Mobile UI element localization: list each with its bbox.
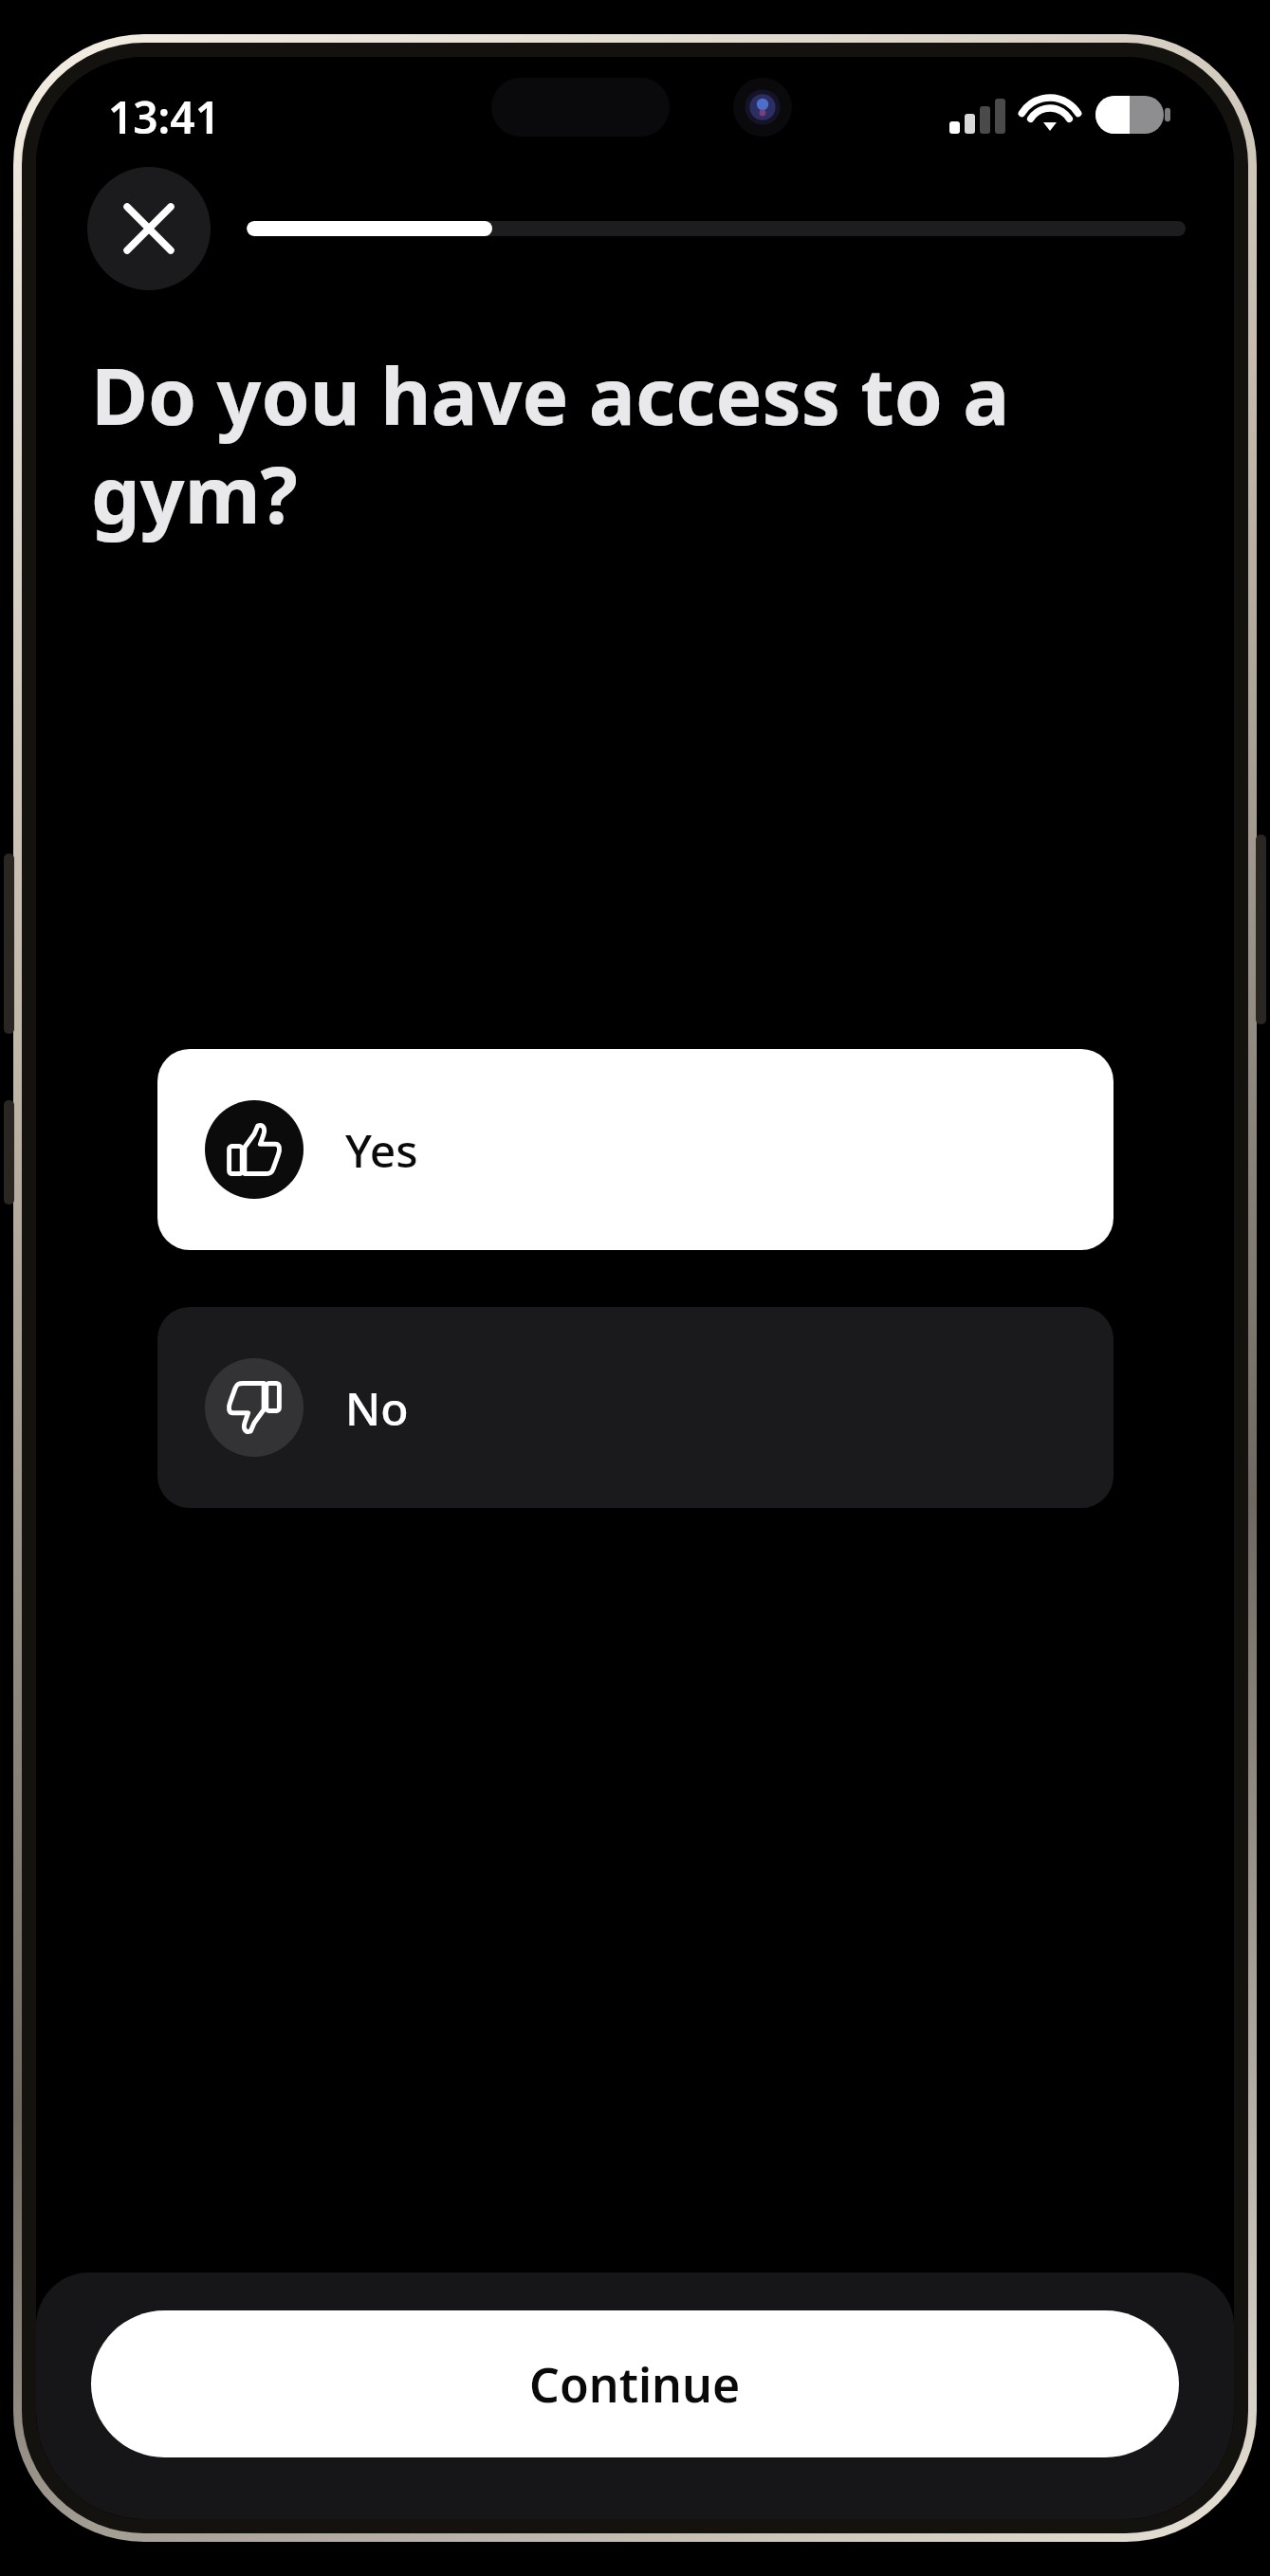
button[interactable]: Yes xyxy=(157,1049,1114,1250)
button[interactable]: Close xyxy=(87,167,211,290)
button[interactable]: No xyxy=(157,1307,1114,1508)
staticText: No xyxy=(345,1377,409,1439)
staticText: Continue xyxy=(529,2352,741,2417)
button[interactable]: Continue xyxy=(91,2310,1179,2457)
staticText: 13:41 xyxy=(108,87,220,147)
staticText: Do you have access to a gym? xyxy=(91,341,1139,546)
staticText: Yes xyxy=(345,1119,418,1181)
